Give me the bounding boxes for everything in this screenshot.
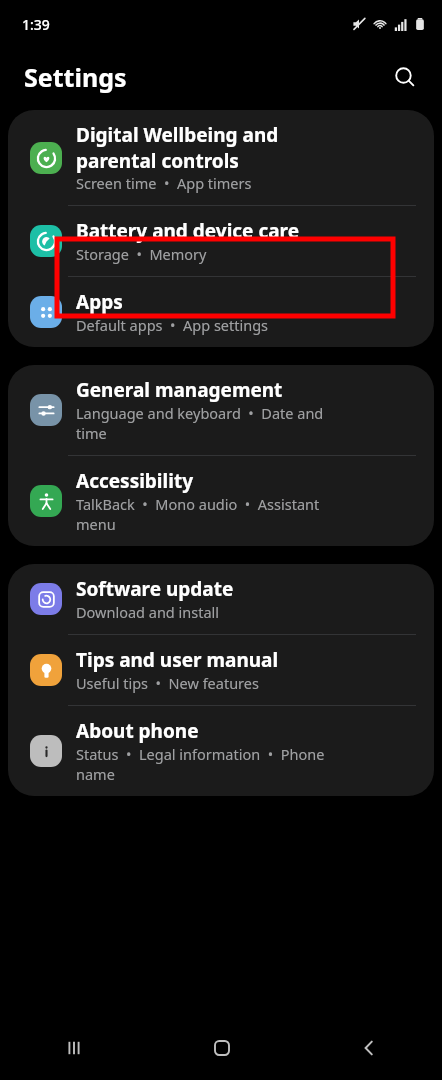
- staticText: General management: [76, 377, 283, 403]
- staticText: Software update: [76, 576, 234, 602]
- button[interactable]: Accessibility: [8, 456, 434, 546]
- staticText: Accessibility: [76, 468, 193, 494]
- button[interactable]: Tips and user manual: [8, 635, 434, 705]
- button[interactable]: Search: [387, 59, 423, 95]
- staticText: 1:39: [22, 15, 50, 34]
- staticText: Tips and user manual: [76, 647, 279, 673]
- staticText: Screen time • App timers: [76, 173, 252, 193]
- staticText: Status • Legal information • Phone name: [76, 744, 325, 784]
- staticText: Useful tips • New features: [76, 673, 259, 693]
- button[interactable]: About phone: [8, 706, 434, 796]
- button[interactable]: Recents: [0, 1016, 148, 1080]
- staticText: TalkBack • Mono audio • Assistant menu: [76, 494, 320, 534]
- button[interactable]: Back: [295, 1016, 442, 1080]
- staticText: Digital Wellbeing and parental controls: [76, 122, 279, 173]
- staticText: Storage • Memory: [76, 244, 207, 264]
- staticText: Battery and device care: [76, 218, 300, 244]
- staticText: Settings: [24, 60, 127, 94]
- button[interactable]: Home: [148, 1016, 295, 1080]
- staticText: Apps: [76, 289, 123, 315]
- button[interactable]: Software update: [8, 564, 434, 634]
- button[interactable]: General management: [8, 365, 434, 455]
- button[interactable]: Digital Wellbeing and parental controls: [8, 110, 434, 205]
- staticText: About phone: [76, 718, 199, 744]
- staticText: Default apps • App settings: [76, 315, 269, 335]
- button[interactable]: Battery and device care: [8, 206, 434, 276]
- staticText: Download and install: [76, 602, 220, 622]
- button[interactable]: Apps: [8, 277, 434, 347]
- staticText: Language and keyboard • Date and time: [76, 403, 324, 443]
